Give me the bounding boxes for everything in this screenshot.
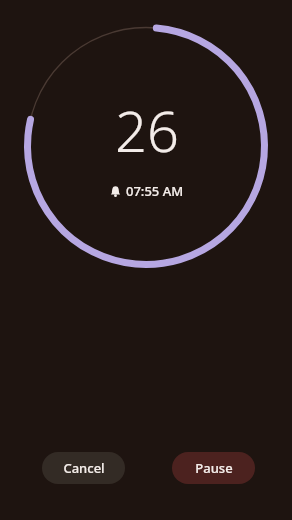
button[interactable]: Cancel [42,452,125,484]
staticText: 26 [115,92,179,168]
staticText: Cancel [63,459,105,477]
staticText: Pause [195,459,233,477]
staticText: 07:55 AM [126,182,184,200]
button[interactable]: Pause [172,452,255,484]
